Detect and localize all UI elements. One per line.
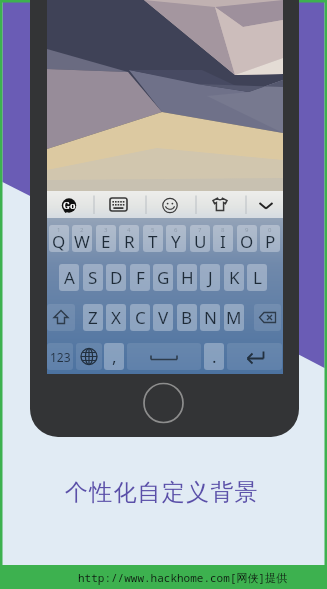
button[interactable]: 9 bbox=[237, 225, 257, 252]
button[interactable]: 2 bbox=[72, 225, 92, 252]
button[interactable]: Switch language bbox=[76, 343, 102, 370]
button[interactable]: 1 bbox=[49, 225, 69, 252]
button[interactable]: Enter bbox=[227, 343, 282, 370]
button[interactable]: Theme bbox=[212, 197, 228, 212]
staticText: 4 bbox=[127, 226, 131, 234]
staticText: 1 bbox=[57, 226, 61, 234]
staticText: 123 bbox=[50, 349, 71, 365]
staticText: E bbox=[101, 230, 111, 252]
staticText: S bbox=[88, 266, 98, 289]
staticText: 9 bbox=[245, 226, 249, 234]
staticText: P bbox=[265, 230, 276, 252]
staticText: H bbox=[181, 266, 194, 289]
button[interactable]: Hide keyboard bbox=[258, 197, 274, 213]
button[interactable]: N bbox=[200, 304, 220, 331]
staticText: , bbox=[112, 345, 117, 368]
staticText: Y bbox=[171, 230, 181, 252]
button[interactable]: A bbox=[59, 264, 79, 291]
staticText: C bbox=[135, 306, 146, 329]
staticText: 6 bbox=[174, 226, 178, 234]
staticText: Z bbox=[88, 306, 98, 329]
staticText: 2 bbox=[80, 226, 84, 234]
button[interactable]: . bbox=[204, 343, 224, 370]
button[interactable]: Z bbox=[83, 304, 103, 331]
button[interactable]: V bbox=[153, 304, 173, 331]
button[interactable]: , bbox=[104, 343, 124, 370]
button[interactable]: D bbox=[106, 264, 126, 291]
button[interactable]: H bbox=[177, 264, 197, 291]
button[interactable]: 3 bbox=[96, 225, 116, 252]
staticText: O bbox=[240, 230, 254, 252]
button[interactable]: C bbox=[130, 304, 150, 331]
staticText: B bbox=[181, 306, 193, 329]
button[interactable]: 7 bbox=[190, 225, 210, 252]
staticText: M bbox=[226, 306, 242, 329]
staticText: R bbox=[124, 230, 135, 252]
button[interactable]: 123 bbox=[47, 343, 73, 370]
button[interactable]: G bbox=[153, 264, 173, 291]
button[interactable]: 4 bbox=[119, 225, 139, 252]
staticText: D bbox=[110, 266, 123, 289]
staticText: G bbox=[157, 266, 170, 289]
button[interactable]: Space bbox=[127, 343, 201, 370]
staticText: Q bbox=[52, 230, 66, 252]
staticText: 5 bbox=[151, 226, 155, 234]
button[interactable]: X bbox=[106, 304, 126, 331]
button[interactable]: Shift bbox=[47, 304, 75, 331]
staticText: X bbox=[111, 306, 121, 329]
button[interactable]: Keyboard layout bbox=[110, 198, 127, 211]
button[interactable]: S bbox=[83, 264, 103, 291]
staticText: . bbox=[212, 345, 217, 368]
staticText: K bbox=[229, 266, 240, 289]
staticText: I bbox=[220, 230, 226, 252]
staticText: N bbox=[204, 306, 217, 329]
staticText: J bbox=[208, 266, 213, 289]
button[interactable]: B bbox=[177, 304, 197, 331]
button[interactable]: J bbox=[200, 264, 220, 291]
button[interactable]: M bbox=[224, 304, 244, 331]
button[interactable]: 8 bbox=[213, 225, 233, 252]
staticText: A bbox=[64, 266, 75, 289]
staticText: F bbox=[136, 266, 145, 289]
staticText: 3 bbox=[104, 226, 108, 234]
button[interactable]: 5 bbox=[143, 225, 163, 252]
button[interactable]: 0 bbox=[260, 225, 280, 252]
button[interactable]: L bbox=[247, 264, 267, 291]
button[interactable]: Backspace bbox=[254, 304, 281, 331]
button[interactable]: 6 bbox=[166, 225, 186, 252]
staticText: 0 bbox=[268, 226, 272, 234]
button[interactable]: Emoji bbox=[162, 197, 178, 213]
staticText: 个性化自定义背景 bbox=[65, 478, 259, 507]
staticText: U bbox=[194, 230, 207, 252]
staticText: http://www.hackhome.com[网侠]提供 bbox=[78, 570, 287, 585]
staticText: Go bbox=[63, 199, 76, 211]
staticText: W bbox=[74, 230, 90, 252]
button[interactable]: F bbox=[130, 264, 150, 291]
staticText: 8 bbox=[221, 226, 225, 234]
staticText: V bbox=[158, 306, 169, 329]
button[interactable]: GO Keyboard menu bbox=[61, 197, 77, 213]
staticText: 7 bbox=[198, 226, 202, 234]
button[interactable]: K bbox=[224, 264, 244, 291]
staticText: T bbox=[148, 230, 158, 252]
staticText: L bbox=[253, 266, 262, 289]
